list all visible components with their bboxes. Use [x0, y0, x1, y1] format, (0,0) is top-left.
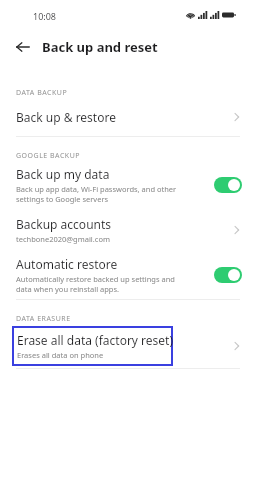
staticText: Automatic restore [16, 256, 118, 272]
button[interactable]: Back [10, 34, 36, 60]
button[interactable]: Automatic restore [0, 251, 256, 299]
staticText: Automatically restore backed up settings… [16, 274, 175, 294]
staticText: DATA ERASURE [16, 314, 71, 324]
button[interactable]: Backup accounts [0, 209, 256, 251]
button[interactable]: Toggle [214, 267, 242, 283]
staticText: Erase all data (factory reset) [17, 332, 174, 348]
staticText: Back up and reset [42, 38, 158, 56]
button[interactable]: Back up & restore [0, 98, 256, 136]
staticText: Backup accounts [16, 216, 112, 232]
staticText: Back up & restore [16, 109, 116, 125]
staticText: GOOGLE BACKUP [16, 151, 80, 161]
staticText: 10:08 [33, 10, 57, 22]
staticText: DATA BACKUP [16, 88, 68, 98]
staticText: techbone2020@gmail.com [16, 234, 110, 244]
staticText: Back up my data [16, 166, 110, 182]
button[interactable]: Erase all data (factory reset) [0, 324, 256, 368]
button[interactable]: Toggle [214, 177, 242, 193]
button[interactable]: Back up my data [0, 161, 256, 209]
staticText: Back up app data, Wi-Fi passwords, and o… [16, 184, 177, 204]
staticText: Erases all data on phone [17, 350, 104, 360]
